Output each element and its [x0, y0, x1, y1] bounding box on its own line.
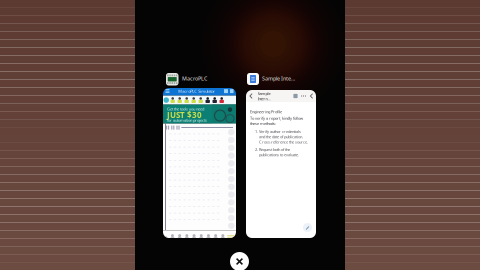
staticText: Sample Inte… [262, 75, 295, 82]
button[interactable]: Sample Internship document [246, 90, 316, 238]
staticText: To verify a report, kindly follow [250, 116, 303, 121]
staticText: MacroPLC Simulator [178, 88, 215, 94]
staticText: these methods: [250, 121, 276, 126]
staticText: for automation projects [167, 117, 207, 123]
staticText: publications to evaluate. [259, 152, 299, 157]
button[interactable]: Close all apps [230, 252, 249, 270]
staticText: Request both of the [259, 147, 290, 152]
staticText: Cross-reference the source. [259, 139, 308, 145]
staticText: JUST $30 [167, 109, 202, 120]
staticText: Sample Intern… [257, 91, 270, 101]
button[interactable]: MacroPLC [163, 88, 236, 238]
staticText: Get the tools you need [167, 106, 204, 112]
staticText: and the date of publication. [259, 134, 303, 139]
staticText: MacroPLC [182, 75, 207, 82]
staticText: Engineering Profile [250, 109, 282, 114]
staticText: 9:41 [166, 81, 173, 86]
button[interactable]: Edit document [303, 223, 312, 232]
staticText: Verify author credentials [259, 129, 301, 134]
staticText: 2. [255, 147, 258, 152]
staticText: 1. [255, 129, 258, 134]
